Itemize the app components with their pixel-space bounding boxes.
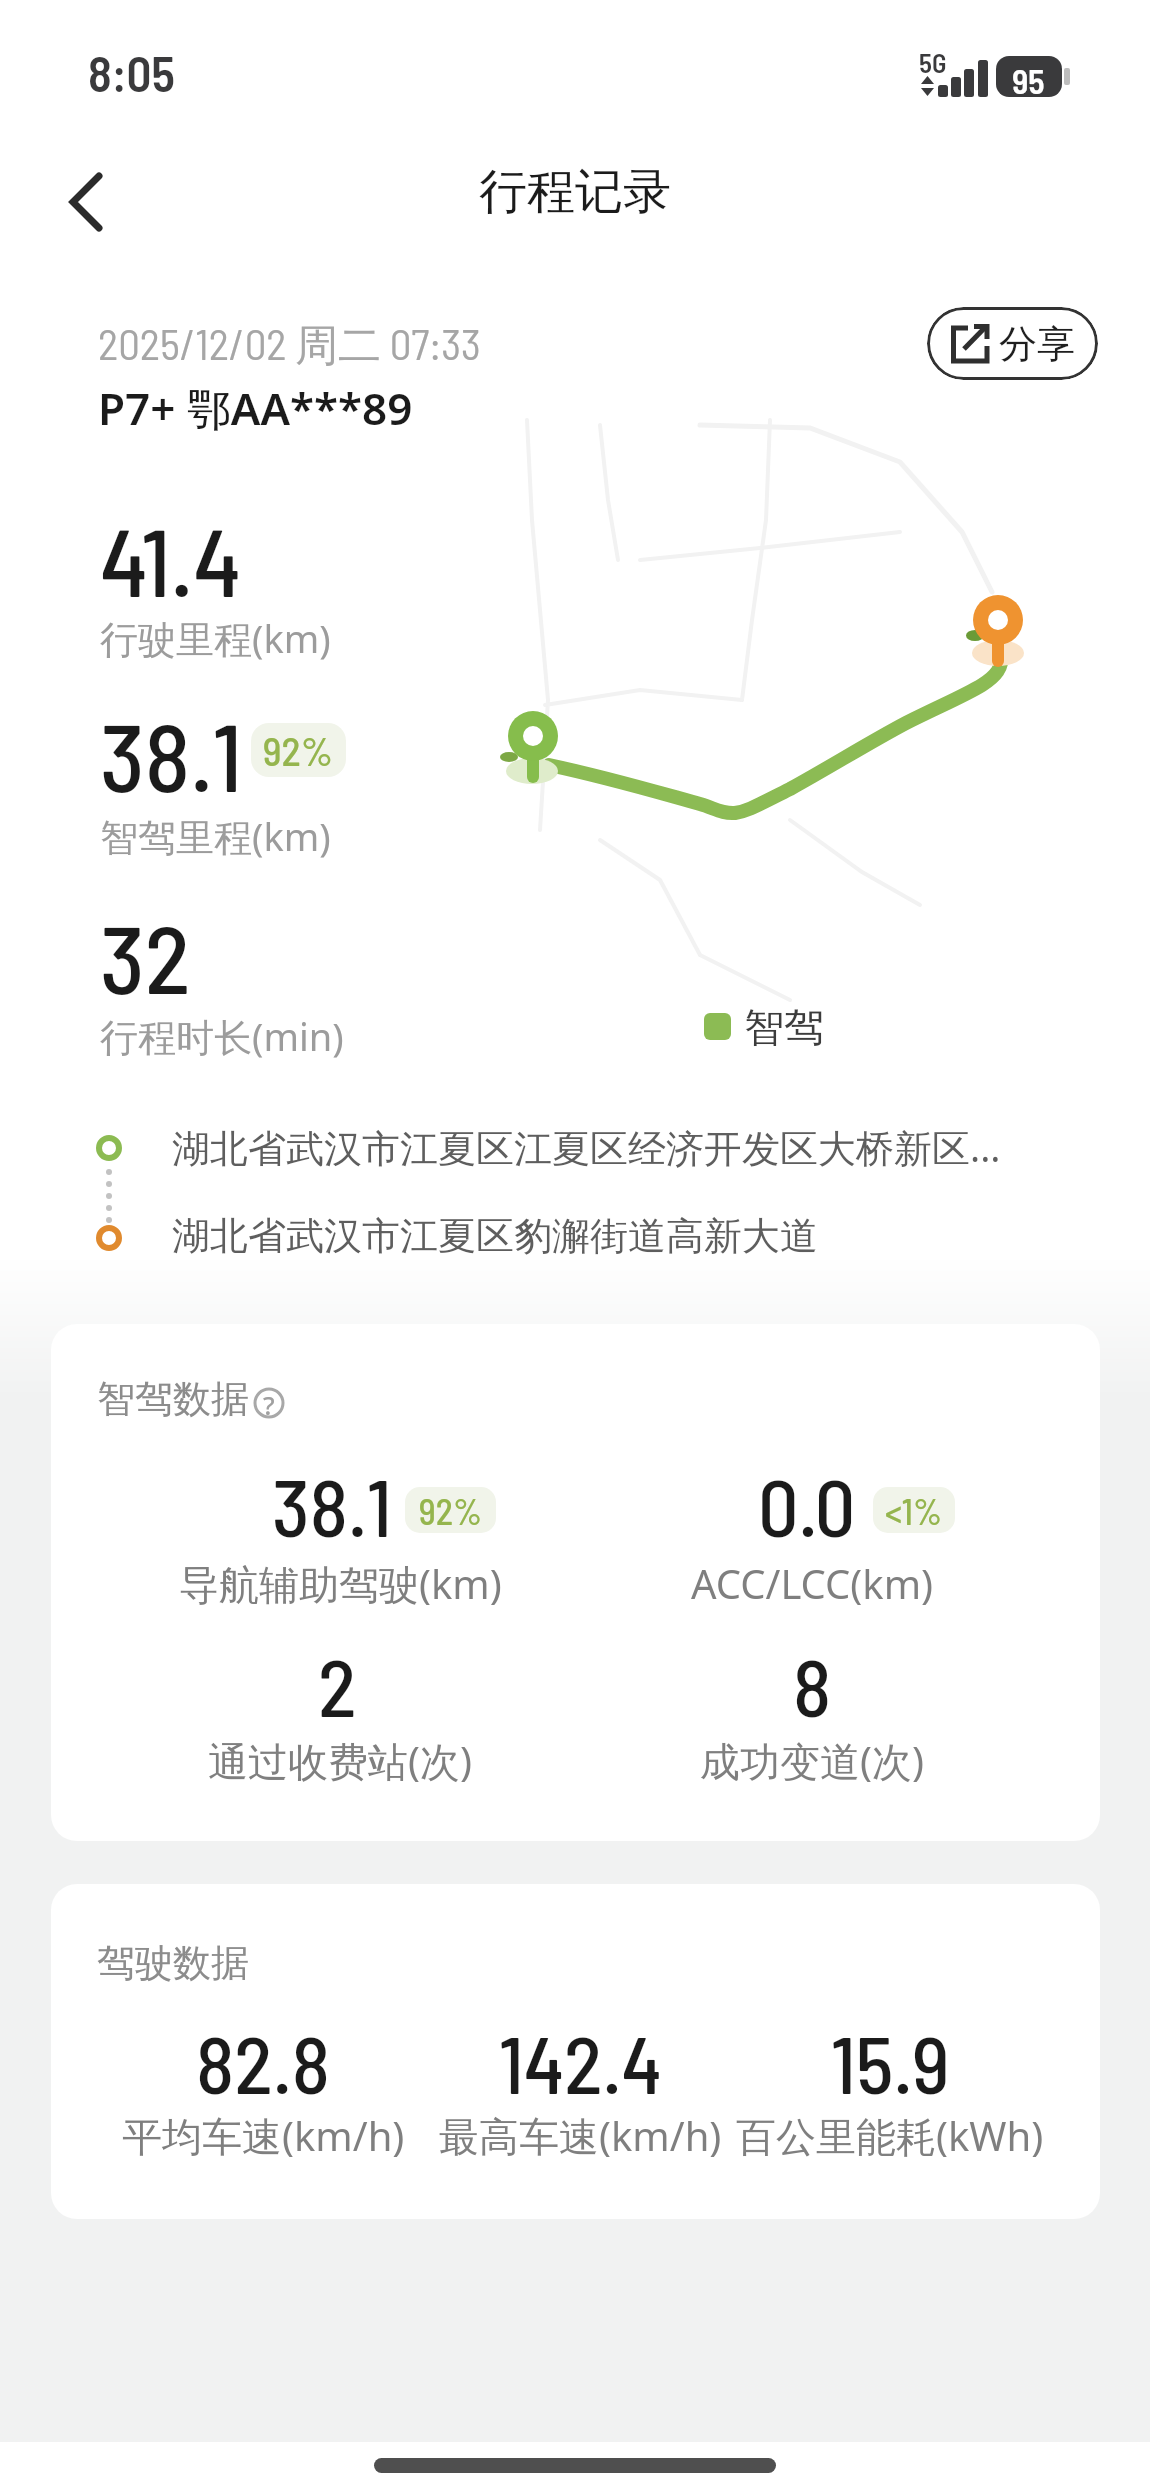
staticText: 成功变道(次) bbox=[700, 1733, 924, 1788]
button[interactable]: 分享 bbox=[927, 307, 1098, 380]
button[interactable] bbox=[55, 165, 125, 240]
staticText: 38.1 bbox=[272, 1457, 392, 1553]
staticText: <1% bbox=[885, 1489, 943, 1532]
button[interactable] bbox=[247, 1381, 291, 1425]
staticText: ? bbox=[263, 1387, 275, 1422]
staticText: 行程时长(min) bbox=[100, 1010, 344, 1062]
staticText: 智驾里程(km) bbox=[100, 810, 331, 862]
staticText: 分享 bbox=[999, 320, 1075, 368]
staticText: 15.9 bbox=[831, 2014, 950, 2110]
staticText: 最高车速(km/h) bbox=[439, 2108, 722, 2163]
staticText: ACC/LCC(km) bbox=[691, 1556, 934, 1610]
staticText: 智驾 bbox=[744, 1002, 824, 1052]
staticText: 8 bbox=[793, 1637, 832, 1733]
staticText: 智驾数据 bbox=[97, 1375, 249, 1423]
staticText: 8:05 bbox=[88, 43, 175, 102]
staticText: 驾驶数据 bbox=[97, 1939, 249, 1987]
staticText: 平均车速(km/h) bbox=[122, 2108, 405, 2163]
staticText: 百公里能耗(kWh) bbox=[736, 2108, 1044, 2163]
staticText: 82.8 bbox=[196, 2014, 330, 2110]
staticText: 92% bbox=[263, 726, 334, 774]
staticText: 38.1 bbox=[100, 697, 243, 811]
staticText: 32 bbox=[100, 899, 191, 1013]
staticText: 通过收费站(次) bbox=[208, 1733, 472, 1788]
staticText: 湖北省武汉市江夏区豹澥街道高新大道 bbox=[172, 1212, 818, 1260]
staticText: 湖北省武汉市江夏区江夏区经济开发区大桥新区... bbox=[172, 1121, 1001, 1173]
staticText: 行程记录 bbox=[479, 162, 671, 222]
staticText: 0.0 bbox=[758, 1457, 856, 1553]
staticText: 142.4 bbox=[499, 2014, 662, 2110]
staticText: 95 bbox=[1012, 60, 1045, 101]
staticText: 2025/12/02 周二 07:33 bbox=[98, 317, 481, 373]
staticText: 92% bbox=[419, 1489, 483, 1532]
staticText: P7+ 鄂AA***89 bbox=[98, 378, 413, 438]
staticText: 41.4 bbox=[100, 502, 242, 616]
staticText: 行驶里程(km) bbox=[100, 612, 331, 664]
staticText: 导航辅助驾驶(km) bbox=[179, 1556, 502, 1611]
staticText: 5G bbox=[919, 46, 947, 78]
staticText: 2 bbox=[318, 1637, 357, 1733]
